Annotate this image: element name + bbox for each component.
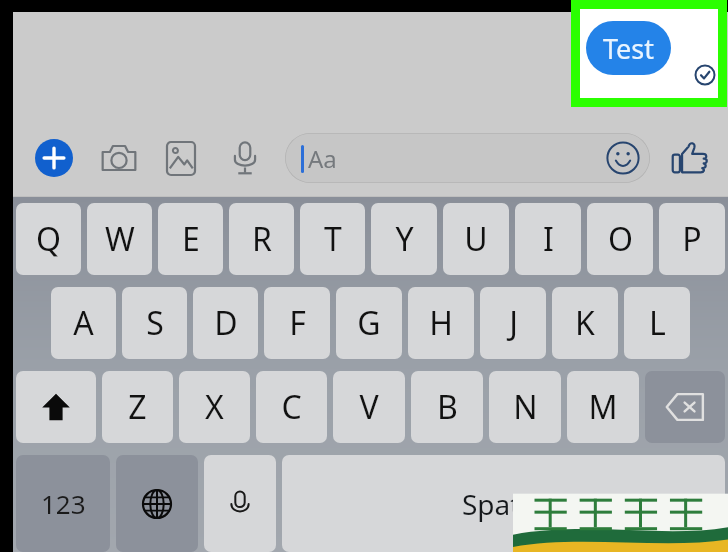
staticText: Spatiu (462, 485, 545, 523)
staticText: K (575, 301, 595, 345)
button[interactable]: Test (586, 21, 671, 75)
staticText: W (105, 217, 135, 261)
button[interactable]: W (87, 203, 152, 275)
button[interactable]: Aa (285, 133, 650, 183)
button[interactable]: L (624, 287, 690, 359)
button[interactable]: P (659, 203, 725, 275)
button[interactable]: More options (35, 139, 73, 177)
staticText: R (252, 217, 272, 261)
staticText: Z (128, 385, 147, 429)
staticText: M (588, 385, 618, 429)
staticText: H (429, 301, 453, 345)
staticText: P (682, 217, 702, 261)
staticText: 123 (41, 486, 86, 521)
button[interactable]: I (515, 203, 581, 275)
button[interactable]: Emoji (606, 141, 640, 175)
staticText: L (649, 301, 666, 345)
staticText: O (608, 217, 633, 261)
button[interactable]: B (411, 371, 483, 443)
button[interactable]: C (256, 371, 327, 443)
staticText: X (205, 385, 224, 429)
button[interactable]: T (300, 203, 365, 275)
button[interactable]: A (51, 287, 116, 359)
button[interactable]: K (552, 287, 618, 359)
button[interactable]: Delivered (694, 64, 716, 86)
button[interactable]: N (489, 371, 561, 443)
button[interactable]: F (264, 287, 330, 359)
staticText: A (73, 301, 94, 345)
staticText: G (357, 301, 381, 345)
button[interactable]: E (158, 203, 223, 275)
button[interactable]: U (443, 203, 509, 275)
button[interactable]: O (587, 203, 653, 275)
staticText: Test (603, 30, 655, 67)
staticText: D (214, 301, 238, 345)
button[interactable]: Q (16, 203, 81, 275)
button[interactable]: Backspace (645, 371, 725, 443)
button[interactable]: R (229, 203, 294, 275)
button[interactable]: D (193, 287, 258, 359)
button[interactable]: V (333, 371, 405, 443)
button[interactable]: H (408, 287, 474, 359)
button[interactable]: S (122, 287, 187, 359)
staticText: F (289, 301, 306, 345)
staticText: U (464, 217, 488, 261)
button[interactable]: X (179, 371, 250, 443)
button[interactable]: Voice message (225, 138, 265, 178)
staticText: B (437, 385, 458, 429)
staticText: S (146, 301, 164, 345)
button[interactable]: Z (102, 371, 173, 443)
staticText: V (359, 385, 379, 429)
staticText: J (509, 301, 518, 345)
button[interactable]: Dictation (204, 455, 276, 552)
staticText: T (324, 217, 342, 261)
staticText: E (182, 217, 200, 261)
staticText: Y (395, 217, 414, 261)
staticText: Aa (308, 142, 337, 175)
button[interactable]: Spatiu (282, 455, 725, 552)
button[interactable]: Photos (161, 138, 201, 178)
button[interactable]: Send like (668, 136, 712, 180)
button[interactable]: J (480, 287, 546, 359)
button[interactable]: 123 (16, 455, 110, 552)
staticText: Q (36, 217, 61, 261)
staticText: I (543, 217, 554, 261)
button[interactable]: M (567, 371, 639, 443)
button[interactable]: G (336, 287, 402, 359)
button[interactable]: Change language (116, 455, 198, 552)
staticText: N (513, 385, 538, 429)
button[interactable]: Camera (99, 138, 139, 178)
button[interactable]: Shift (16, 371, 96, 443)
button[interactable]: Y (371, 203, 437, 275)
staticText: C (281, 385, 302, 429)
